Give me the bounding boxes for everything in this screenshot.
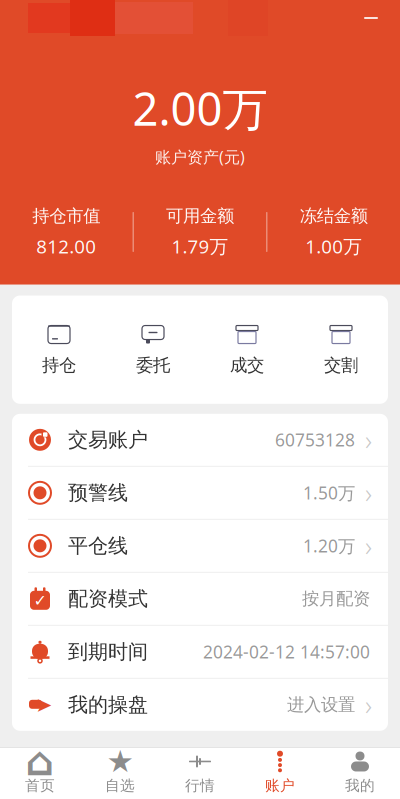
button[interactable]: ★ xyxy=(80,744,160,799)
staticText: ⌂ xyxy=(25,739,54,784)
staticText: 可用金额 xyxy=(166,205,234,227)
button[interactable]: 交易账户 xyxy=(12,414,388,467)
staticText: 平仓线 xyxy=(68,533,128,558)
staticText: 首页 xyxy=(25,776,55,794)
staticText: › xyxy=(365,422,372,457)
button[interactable]: ⌂ xyxy=(0,744,80,799)
button[interactable]: 委托 xyxy=(106,317,200,382)
button[interactable]: 平仓线 xyxy=(12,520,388,573)
staticText: 1.20万 xyxy=(303,534,355,557)
staticText: › xyxy=(365,687,372,722)
button[interactable]: 到期时间 xyxy=(12,626,388,679)
button[interactable]: ✓ xyxy=(12,573,388,626)
button[interactable]: ➤ xyxy=(12,679,388,731)
staticText: 账户资产(元) xyxy=(155,146,245,167)
staticText: 2024-02-12 14:57:00 xyxy=(203,640,370,663)
staticText: 60753128 xyxy=(275,428,355,451)
staticText: 自选 xyxy=(105,776,135,794)
staticText: 冻结金额 xyxy=(300,205,368,227)
staticText: 按月配资 xyxy=(302,588,370,609)
staticText: 配资模式 xyxy=(68,586,148,611)
staticText: › xyxy=(365,475,372,510)
staticText: 行情 xyxy=(185,776,215,794)
button[interactable]: 行情 xyxy=(160,744,240,799)
staticText: 持仓 xyxy=(42,354,76,376)
button[interactable]: 账户 xyxy=(240,744,320,799)
staticText: ➤ xyxy=(35,693,52,716)
staticText: 1.50万 xyxy=(303,481,355,504)
button[interactable]: 预警线 xyxy=(12,467,388,520)
staticText: 1.00万 xyxy=(305,234,362,258)
staticText: 交割 xyxy=(324,354,358,376)
staticText: ★ xyxy=(106,744,133,779)
staticText: › xyxy=(365,528,372,563)
staticText: ✓ xyxy=(33,592,46,610)
button[interactable]: 我的 xyxy=(320,744,400,799)
staticText: 成交 xyxy=(230,354,264,376)
staticText: 到期时间 xyxy=(68,639,148,664)
staticText: 持仓市值 xyxy=(32,205,100,227)
button[interactable]: 持仓 xyxy=(12,317,106,382)
staticText: 1.79万 xyxy=(171,234,228,258)
staticText: 委托 xyxy=(136,354,170,376)
staticText: 我的操盘 xyxy=(68,692,148,717)
staticText: 812.00 xyxy=(36,234,96,258)
button[interactable]: 成交 xyxy=(200,317,294,382)
staticText: 进入设置 xyxy=(287,694,355,715)
staticText: 2.00万 xyxy=(132,78,267,138)
staticText: 我的 xyxy=(345,776,375,794)
button[interactable]: 交割 xyxy=(294,317,388,382)
staticText: 交易账户 xyxy=(68,427,148,452)
staticText: 账户 xyxy=(265,776,295,794)
staticText: 预警线 xyxy=(68,480,128,505)
